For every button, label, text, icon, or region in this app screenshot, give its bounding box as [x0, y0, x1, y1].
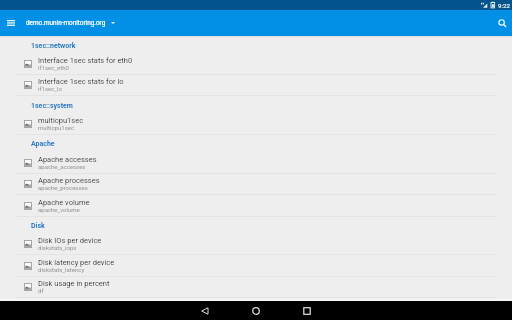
button[interactable]: Search — [492, 13, 512, 33]
staticText: multicpu1sec — [38, 116, 84, 125]
staticText: Disk latency per device — [38, 258, 115, 267]
staticText: df — [38, 287, 44, 294]
button[interactable]: Apache processes — [0, 173, 512, 195]
button[interactable]: Apache volume — [0, 195, 512, 217]
staticText: demo.munin-monitoring.org — [26, 19, 106, 27]
staticText: diskstats_latency — [38, 266, 85, 273]
staticText: if1sec_lo — [38, 85, 62, 92]
staticText: Apache — [31, 140, 55, 148]
button[interactable]: Disk IOs per device — [0, 233, 512, 255]
staticText: 1sec::network — [31, 42, 76, 50]
staticText: Interface 1sec stats for lo — [38, 77, 124, 86]
staticText: if1sec_eth0 — [38, 64, 69, 71]
button[interactable]: Apache accesses — [0, 152, 512, 174]
staticText: Disk IOs per device — [38, 236, 102, 245]
staticText: Apache volume — [38, 198, 90, 207]
staticText: Apache processes — [38, 176, 100, 185]
staticText: 9:22 — [498, 2, 510, 9]
staticText: 1sec::system — [31, 102, 73, 110]
staticText: apache_volume — [38, 206, 80, 213]
button[interactable]: Interface 1sec stats for eth0 — [0, 53, 512, 75]
staticText: Interface 1sec stats for eth0 — [38, 56, 133, 65]
staticText: Disk — [31, 222, 45, 230]
staticText: apache_processes — [38, 184, 88, 191]
button[interactable]: Disk latency per device — [0, 255, 512, 277]
button[interactable]: Back — [185, 301, 225, 320]
staticText: Disk usage in percent — [38, 279, 110, 288]
button[interactable]: Interface 1sec stats for lo — [0, 74, 512, 96]
button[interactable]: demo.munin-monitoring.org — [26, 19, 115, 27]
staticText: apache_accesses — [38, 163, 86, 170]
staticText: Apache accesses — [38, 155, 97, 164]
button[interactable]: multicpu1sec — [0, 113, 512, 135]
button[interactable]: Open navigation drawer — [1, 13, 21, 33]
staticText: diskstats_iops — [38, 244, 77, 251]
button[interactable]: Home — [236, 301, 276, 320]
button[interactable]: Disk usage in percent — [0, 276, 512, 298]
staticText: multicpu1sec — [38, 124, 75, 131]
button[interactable]: Recent apps — [287, 301, 327, 320]
